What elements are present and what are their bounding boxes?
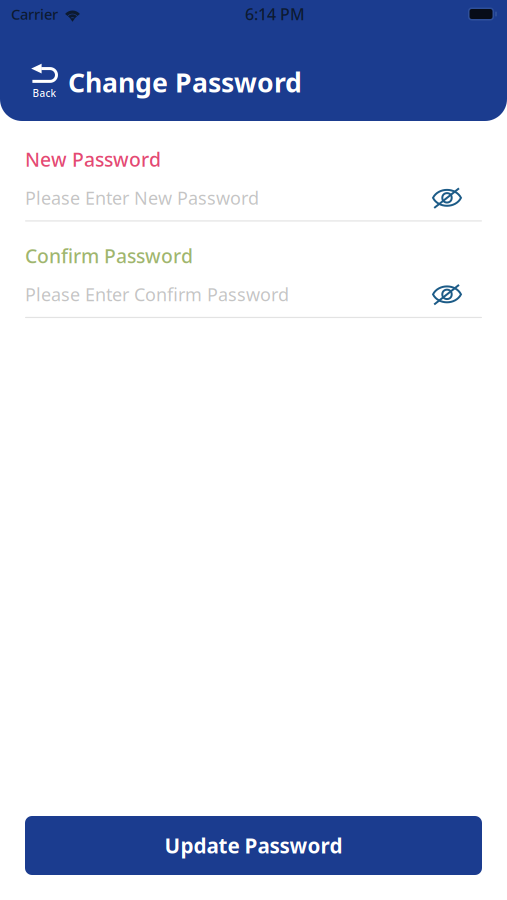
staticText: New Password (25, 146, 161, 172)
button[interactable]: Show Confirm Password (422, 279, 482, 310)
staticText: Please Enter New Password (25, 186, 259, 210)
button[interactable]: Update Password (25, 816, 482, 875)
staticText: 6:14 PM (245, 3, 305, 25)
staticText: Change Password (68, 64, 302, 100)
button[interactable]: Back (31, 64, 58, 100)
staticText: Back (32, 86, 56, 100)
staticText: Carrier (11, 4, 58, 24)
staticText: Update Password (164, 831, 342, 859)
button[interactable]: Show New Password (422, 182, 482, 213)
staticText: Confirm Password (25, 242, 193, 269)
staticText: Please Enter Confirm Password (25, 282, 289, 307)
